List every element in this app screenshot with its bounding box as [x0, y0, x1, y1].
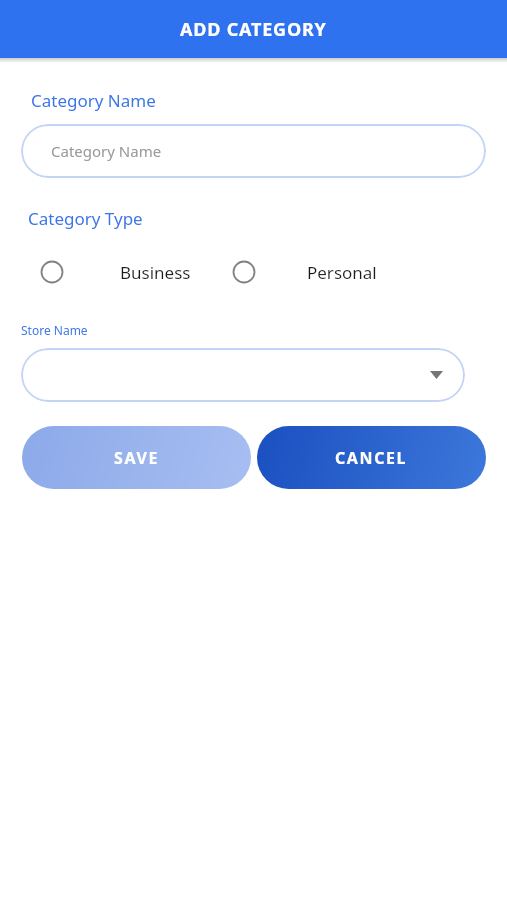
staticText: Personal — [307, 261, 377, 284]
staticText: Store Name — [21, 322, 88, 338]
staticText: Category Name — [51, 141, 162, 161]
staticText: ADD CATEGORY — [180, 17, 327, 42]
button[interactable]: Business — [40, 256, 191, 288]
staticText: Category Name — [31, 89, 156, 112]
button[interactable]: CANCEL — [257, 426, 486, 489]
button[interactable]: Category Name — [21, 124, 486, 178]
button[interactable]: SAVE — [22, 426, 251, 489]
button[interactable]: Personal — [232, 256, 377, 288]
staticText: Business — [120, 261, 191, 284]
staticText: Category Type — [28, 207, 143, 230]
button[interactable]: Select store — [21, 348, 465, 402]
staticText: CANCEL — [335, 447, 408, 469]
staticText: SAVE — [114, 447, 160, 469]
